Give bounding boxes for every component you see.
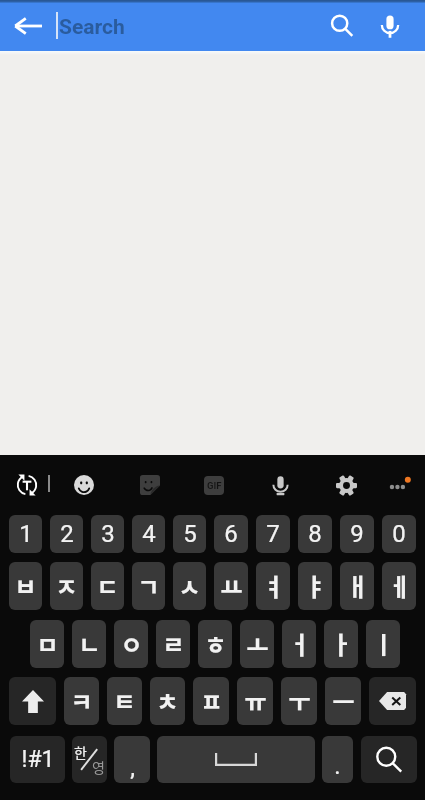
staticText: ㄱ bbox=[137, 568, 160, 603]
button[interactable]: ㅏ bbox=[324, 620, 358, 668]
button[interactable]: !#1 bbox=[10, 736, 65, 783]
staticText: ㅐ bbox=[346, 568, 369, 603]
button[interactable]: ㅌ bbox=[107, 677, 142, 725]
button[interactable]: Settings bbox=[326, 465, 366, 505]
button[interactable]: Search bbox=[318, 2, 366, 50]
button[interactable]: 4 bbox=[132, 515, 165, 553]
staticText: , bbox=[130, 754, 135, 782]
staticText: ㅕ bbox=[262, 568, 285, 603]
staticText: ㄹ bbox=[162, 626, 185, 661]
button[interactable]: ㅈ bbox=[50, 562, 83, 610]
button[interactable]: Translate bbox=[7, 465, 47, 505]
button[interactable]: Emoji bbox=[64, 465, 104, 505]
button[interactable]: Korean English toggle bbox=[72, 736, 107, 783]
button[interactable]: Back bbox=[2, 0, 54, 51]
button[interactable]: Voice search bbox=[366, 2, 414, 50]
button[interactable]: Backspace bbox=[369, 677, 416, 725]
button[interactable]: ㅊ bbox=[150, 677, 185, 725]
button[interactable]: Shift bbox=[9, 677, 56, 725]
staticText: Search bbox=[59, 15, 125, 40]
staticText: ㅑ bbox=[304, 568, 327, 603]
staticText: ㅣ bbox=[372, 626, 395, 661]
button[interactable]: ㅎ bbox=[198, 620, 232, 668]
button[interactable]: ㅓ bbox=[282, 620, 316, 668]
staticText: ㅂ bbox=[14, 568, 37, 603]
staticText: 6 bbox=[224, 520, 238, 548]
button[interactable]: ㅛ bbox=[214, 562, 248, 610]
button[interactable]: ㅐ bbox=[340, 562, 374, 610]
button[interactable]: Space bbox=[157, 736, 315, 783]
staticText: ㅎ bbox=[204, 626, 227, 661]
staticText: 5 bbox=[183, 520, 197, 548]
button[interactable]: ㄴ bbox=[72, 620, 106, 668]
staticText: 영 bbox=[92, 757, 105, 777]
button[interactable]: ㅁ bbox=[30, 620, 64, 668]
staticText: ㅋ bbox=[70, 683, 93, 718]
button[interactable]: ㄷ bbox=[91, 562, 124, 610]
button[interactable]: ㅕ bbox=[256, 562, 290, 610]
staticText: ㅛ bbox=[220, 568, 243, 603]
button[interactable]: 0 bbox=[382, 515, 416, 553]
button[interactable]: Voice input bbox=[260, 465, 300, 505]
button[interactable]: ㅇ bbox=[114, 620, 148, 668]
staticText: 8 bbox=[308, 520, 322, 548]
button[interactable]: ㅅ bbox=[173, 562, 206, 610]
button[interactable]: Search bbox=[361, 736, 417, 783]
button[interactable]: More options bbox=[379, 465, 419, 505]
button[interactable]: 7 bbox=[256, 515, 290, 553]
button[interactable]: ㅜ bbox=[281, 677, 317, 725]
staticText: 3 bbox=[101, 520, 115, 548]
staticText: ㅔ bbox=[388, 568, 411, 603]
button[interactable]: 5 bbox=[173, 515, 206, 553]
staticText: ㅇ bbox=[120, 626, 143, 661]
staticText: ㄴ bbox=[78, 626, 101, 661]
button[interactable]: ㅠ bbox=[237, 677, 273, 725]
button[interactable]: 1 bbox=[9, 515, 42, 553]
staticText: ㅍ bbox=[200, 683, 223, 718]
staticText: 4 bbox=[142, 520, 156, 548]
staticText: ㅁ bbox=[36, 626, 59, 661]
button[interactable]: ㅡ bbox=[325, 677, 361, 725]
staticText: 0 bbox=[392, 520, 406, 548]
staticText: ㅗ bbox=[246, 626, 269, 661]
staticText: 한 bbox=[74, 742, 87, 762]
staticText: 7 bbox=[266, 520, 280, 548]
button[interactable]: ㄱ bbox=[132, 562, 165, 610]
button[interactable]: ㄹ bbox=[156, 620, 190, 668]
button[interactable]: ㅗ bbox=[240, 620, 274, 668]
button[interactable]: 9 bbox=[340, 515, 374, 553]
staticText: ㅡ bbox=[332, 683, 355, 718]
button[interactable]: 3 bbox=[91, 515, 124, 553]
staticText: ㅏ bbox=[330, 626, 353, 661]
staticText: !#1 bbox=[21, 746, 55, 773]
staticText: . bbox=[334, 752, 341, 780]
staticText: 1 bbox=[19, 520, 33, 548]
staticText: ㅜ bbox=[288, 683, 311, 718]
button[interactable]: 6 bbox=[214, 515, 248, 553]
button[interactable]: ㅂ bbox=[9, 562, 42, 610]
staticText: 2 bbox=[60, 520, 74, 548]
staticText: ㅠ bbox=[244, 683, 267, 718]
staticText: 9 bbox=[350, 520, 364, 548]
button[interactable]: ㅣ bbox=[366, 620, 400, 668]
button[interactable]: 2 bbox=[50, 515, 83, 553]
button[interactable]: , bbox=[114, 736, 150, 783]
button[interactable]: ㅋ bbox=[64, 677, 99, 725]
staticText: ㅊ bbox=[156, 683, 179, 718]
staticText: ㅓ bbox=[288, 626, 311, 661]
staticText: ㅅ bbox=[178, 568, 201, 603]
staticText: GIF bbox=[207, 480, 222, 491]
button[interactable]: . bbox=[322, 736, 353, 783]
button[interactable]: ㅑ bbox=[298, 562, 332, 610]
button[interactable]: ㅔ bbox=[382, 562, 416, 610]
button[interactable]: Stickers bbox=[130, 465, 170, 505]
staticText: ㄷ bbox=[96, 568, 119, 603]
staticText: ㅈ bbox=[55, 568, 78, 603]
button[interactable]: ㅍ bbox=[193, 677, 229, 725]
staticText: ㅌ bbox=[113, 683, 136, 718]
button[interactable]: GIF bbox=[194, 465, 234, 505]
button[interactable]: 8 bbox=[298, 515, 332, 553]
